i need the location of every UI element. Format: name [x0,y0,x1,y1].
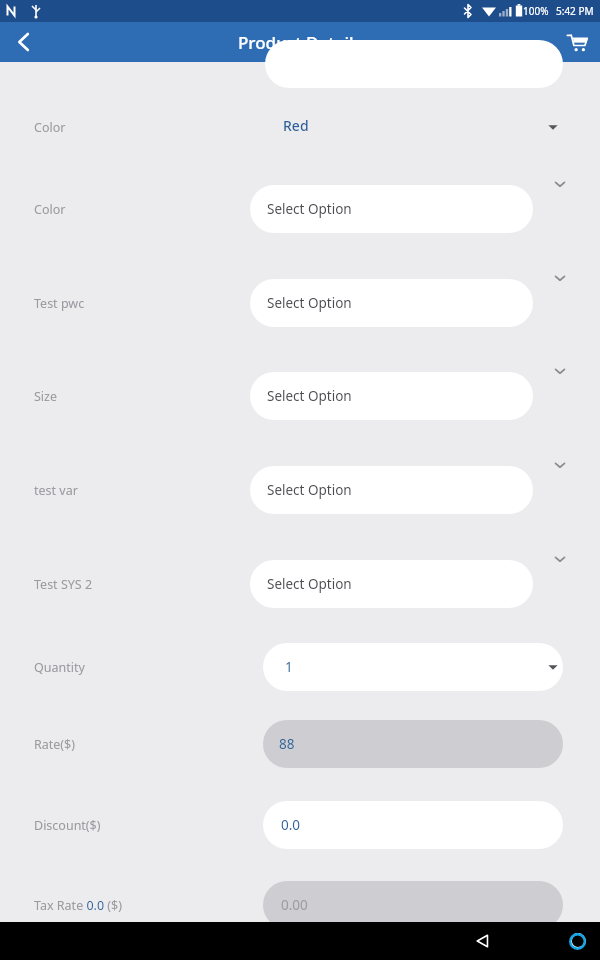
button[interactable]: Back [183,922,600,960]
staticText: Color [34,119,66,136]
staticText: Select Option [267,387,352,405]
staticText: 0.00 [281,896,308,914]
staticText: Select Option [267,200,352,218]
staticText: Product Details [238,31,362,54]
staticText: Test SYS 2 [34,576,93,593]
staticText: 1 [285,658,293,676]
staticText: Select Option [267,575,352,593]
staticText: 88 [279,735,295,753]
button[interactable]: Cart [554,22,600,62]
staticText: Tax Rate 0.0 ($) [34,897,122,914]
button[interactable]: Expand [549,267,571,289]
button[interactable] [250,372,533,420]
staticText: 5:42 PM [556,4,594,18]
button[interactable]: Open dropdown [543,117,563,137]
staticText: Size [34,388,58,405]
button[interactable] [250,279,533,327]
button[interactable]: Open dropdown [543,657,563,677]
staticText: Rate($) [34,736,76,753]
button[interactable]: Expand [549,360,571,382]
button[interactable] [250,560,533,608]
button[interactable]: Expand [549,173,571,195]
staticText: Select Option [267,481,352,499]
staticText: Test pwc [34,295,85,312]
button[interactable] [263,720,563,768]
button[interactable]: Assistant [562,926,592,956]
button[interactable] [250,466,533,514]
staticText: Quantity [34,659,85,676]
button[interactable]: Recent apps [373,922,600,960]
button[interactable] [263,881,563,929]
staticText: test var [34,482,78,499]
button[interactable] [265,40,563,88]
button[interactable]: Expand [549,454,571,476]
button[interactable]: Back [0,22,44,62]
button[interactable]: Expand [549,548,571,570]
staticText: Select Option [267,294,352,312]
staticText: Color [34,201,66,218]
staticText: 0.0 [281,816,301,834]
staticText: 100% [523,4,549,18]
button[interactable] [263,801,563,849]
button[interactable] [250,185,533,233]
button[interactable]: Home [278,922,600,960]
staticText: Discount($) [34,817,101,834]
button[interactable] [263,643,563,691]
staticText: Red [283,116,309,135]
